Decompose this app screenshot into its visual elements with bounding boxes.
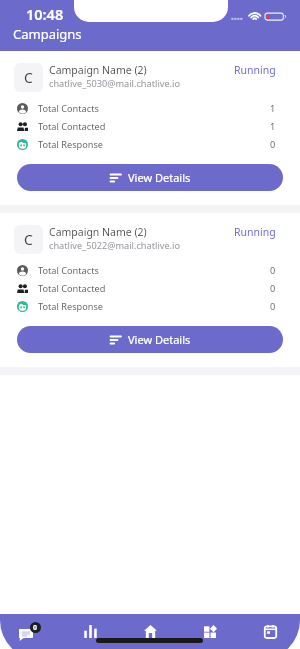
staticText: Total Contacted	[38, 120, 106, 133]
staticText: Campaign Name (2)	[49, 225, 147, 239]
staticText: C	[24, 68, 33, 87]
button[interactable]: View Details	[17, 326, 283, 353]
staticText: Total Contacted	[38, 282, 106, 295]
staticText: 0	[33, 623, 38, 633]
button[interactable]: Statistics	[60, 618, 120, 645]
staticText: Total Response	[38, 300, 104, 313]
staticText: Total Response	[38, 138, 104, 151]
staticText: Running	[234, 63, 276, 77]
staticText: Running	[234, 225, 276, 239]
staticText: Total Contacts	[38, 264, 99, 277]
staticText: 0	[270, 282, 276, 295]
button[interactable]: Calendar	[240, 618, 300, 645]
staticText: chatlive_5030@mail.chatlive.io	[49, 77, 180, 90]
staticText: 0	[270, 138, 276, 151]
staticText: View Details	[128, 332, 191, 347]
button[interactable]: Messages	[0, 618, 60, 645]
staticText: 1	[270, 120, 276, 133]
button[interactable]: Home	[120, 618, 180, 645]
staticText: View Details	[128, 170, 191, 185]
staticText: 1	[270, 102, 276, 115]
button[interactable]: View Details	[17, 164, 283, 191]
staticText: 0	[270, 300, 276, 313]
staticText: 10:48	[26, 4, 64, 24]
staticText: chatlive_5022@mail.chatlive.io	[49, 239, 180, 252]
staticText: 0	[270, 264, 276, 277]
staticText: Campaign Name (2)	[49, 63, 147, 77]
staticText: Campaigns	[13, 25, 82, 43]
staticText: C	[24, 230, 33, 249]
staticText: Total Contacts	[38, 102, 99, 115]
button[interactable]: Apps	[180, 618, 240, 645]
